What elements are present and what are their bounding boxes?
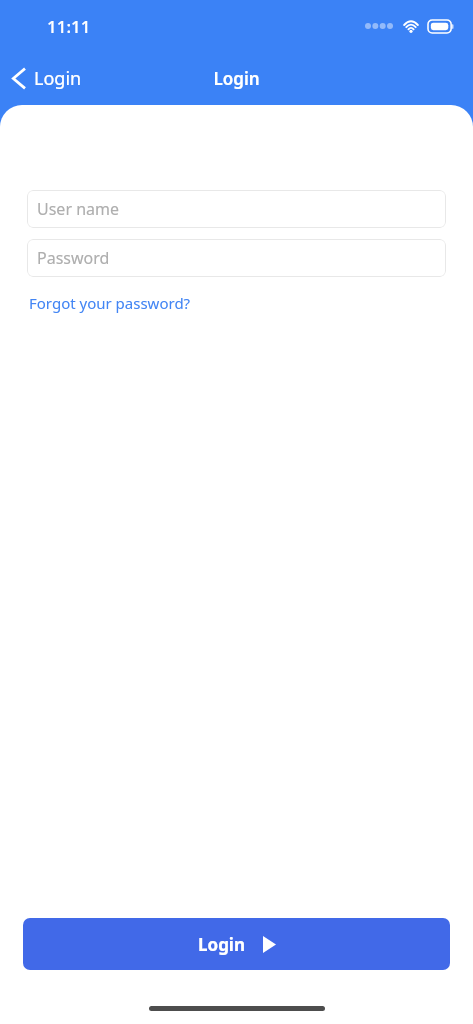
button[interactable]: Login <box>0 60 94 97</box>
button[interactable]: Password <box>27 239 446 277</box>
staticText: 11:11 <box>47 15 91 38</box>
staticText: Password <box>37 247 110 269</box>
button[interactable]: Forgot your password? <box>29 291 191 315</box>
button[interactable]: Login <box>23 918 450 970</box>
staticText: User name <box>37 198 120 220</box>
other: Continue <box>263 936 276 953</box>
staticText: Login <box>198 933 246 956</box>
staticText: Login <box>34 66 82 91</box>
staticText: Login <box>213 67 260 90</box>
button[interactable]: User name <box>27 190 446 228</box>
staticText: Forgot your password? <box>29 293 191 313</box>
